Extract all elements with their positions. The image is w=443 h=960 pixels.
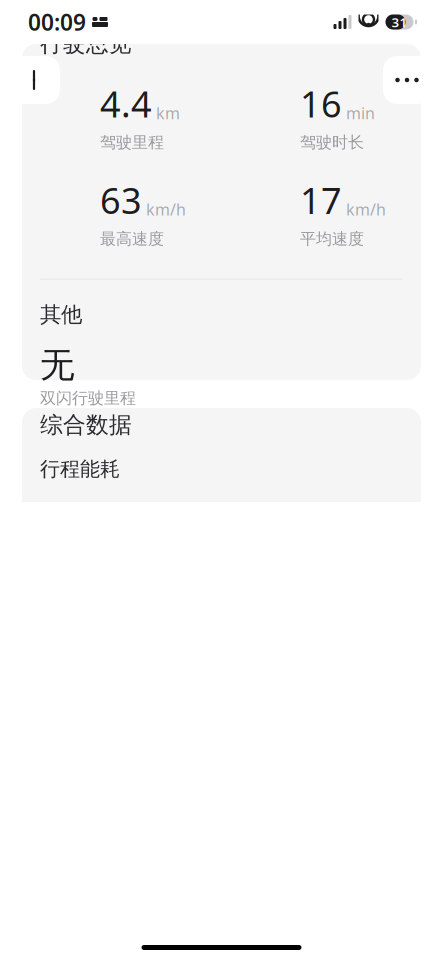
staticText: 其他 xyxy=(40,302,82,328)
staticText: 31 xyxy=(391,13,407,31)
staticText: 行程能耗 xyxy=(40,457,120,481)
staticText: km xyxy=(156,102,180,123)
button[interactable]: Back xyxy=(12,56,60,104)
staticText: 无 xyxy=(40,344,75,386)
staticText: 16 xyxy=(300,80,342,127)
staticText: 双闪行驶里程 xyxy=(40,388,136,408)
staticText: km/h xyxy=(146,199,186,220)
staticText: 最高速度 xyxy=(100,229,164,249)
staticText: 17.24 xyxy=(40,493,121,536)
staticText: 4.4 xyxy=(100,80,152,127)
staticText: 驾驶时长 xyxy=(300,133,364,152)
staticText: 00:09 xyxy=(28,7,86,37)
staticText: 行驶总览 xyxy=(40,30,132,58)
button[interactable]: More options xyxy=(383,56,431,104)
staticText: km/h xyxy=(346,199,386,220)
staticText: 综合数据 xyxy=(40,411,132,439)
staticText: 17 xyxy=(300,176,342,224)
staticText: 63 xyxy=(100,176,142,224)
staticText: 0.76 xyxy=(245,493,308,536)
staticText: 驾驶里程 xyxy=(100,133,164,152)
staticText: min xyxy=(346,102,375,123)
staticText: 平均速度 xyxy=(300,229,364,249)
